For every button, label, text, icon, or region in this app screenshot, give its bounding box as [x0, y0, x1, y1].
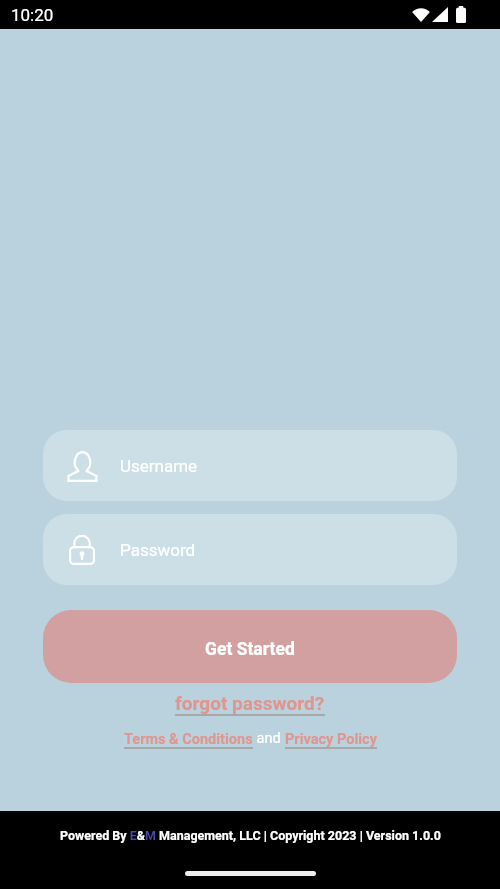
button[interactable]: forgot password? — [169, 689, 331, 719]
staticText: 10:20 — [11, 5, 54, 25]
staticText: Terms & Conditions — [124, 731, 253, 748]
button[interactable]: Terms & Conditions — [124, 731, 253, 750]
button[interactable]: Privacy Policy — [285, 731, 377, 750]
staticText: Get Started — [205, 639, 295, 660]
staticText: and — [253, 730, 285, 747]
staticText: Username — [120, 456, 198, 476]
staticText: forgot password? — [175, 692, 325, 714]
other: Password field — [66, 534, 98, 566]
staticText: Password — [120, 540, 196, 560]
other: Battery — [456, 6, 466, 23]
other: Wi-Fi — [412, 7, 430, 22]
staticText: Privacy Policy — [285, 731, 377, 748]
button[interactable]: Get Started — [43, 610, 457, 683]
other: Username field — [66, 450, 98, 482]
button[interactable]: Password field — [43, 514, 457, 585]
staticText: Powered By E&M Management, LLC | Copyrig… — [60, 828, 441, 843]
button[interactable]: Username field — [43, 430, 457, 501]
other: Cellular signal — [432, 7, 448, 22]
